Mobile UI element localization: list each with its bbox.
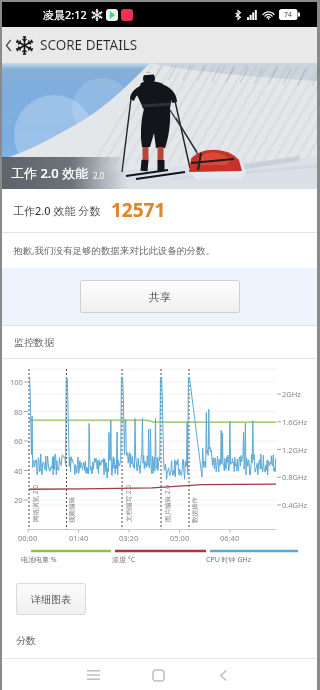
staticText: 监控数据 bbox=[14, 336, 54, 349]
staticText: CPU 时钟 GHz bbox=[206, 555, 251, 565]
staticText: 视频编辑 bbox=[68, 497, 76, 523]
staticText: 工作 2.0 效能 bbox=[11, 164, 89, 182]
staticText: 00:00 bbox=[18, 533, 38, 543]
staticText: 06:40 bbox=[220, 533, 240, 543]
staticText: 2GHz bbox=[282, 389, 301, 399]
staticText: 03:20 bbox=[119, 533, 139, 543]
button[interactable]: Back bbox=[208, 660, 238, 690]
staticText: 80 bbox=[14, 407, 23, 417]
staticText: 工作2.0 效能 分数 bbox=[13, 203, 101, 218]
button[interactable]: 共享 bbox=[80, 280, 240, 313]
staticText: SCORE DETAILS bbox=[40, 36, 138, 54]
staticText: 图片编辑 2.0 bbox=[163, 485, 172, 522]
staticText: 01:40 bbox=[69, 533, 89, 543]
staticText: 100 bbox=[10, 377, 23, 387]
staticText: 网络浏览 2.0 bbox=[31, 485, 40, 522]
staticText: 详细图表 bbox=[31, 593, 71, 606]
staticText: 60 bbox=[14, 436, 23, 446]
staticText: 数据操作 bbox=[191, 497, 199, 523]
button[interactable]: Home bbox=[143, 660, 173, 690]
button[interactable]: Back bbox=[2, 27, 15, 63]
staticText: 40 bbox=[14, 466, 23, 476]
staticText: 2.0 bbox=[93, 170, 105, 181]
staticText: 74 bbox=[284, 10, 293, 20]
staticText: 电池电量 % bbox=[21, 555, 57, 565]
staticText: 共享 bbox=[149, 290, 171, 304]
staticText: 05:00 bbox=[170, 533, 190, 543]
staticText: 20 bbox=[14, 495, 23, 505]
staticText: 1.2GHz bbox=[282, 445, 308, 455]
staticText: 12571 bbox=[111, 197, 166, 223]
staticText: 分数 bbox=[16, 634, 36, 647]
staticText: 1.6GHz bbox=[282, 417, 308, 427]
staticText: 文档编写 2.0 bbox=[124, 485, 133, 522]
staticText: 凌晨2:12 bbox=[43, 7, 87, 22]
staticText: 抱歉,我们没有足够的数据来对比此设备的分数。 bbox=[13, 244, 216, 257]
button[interactable]: Recent apps bbox=[78, 660, 108, 690]
staticText: 0.8GHz bbox=[282, 472, 308, 482]
staticText: 0.4GHz bbox=[282, 500, 308, 510]
staticText: 温度 °C bbox=[112, 555, 136, 565]
button[interactable]: 详细图表 bbox=[16, 583, 86, 615]
